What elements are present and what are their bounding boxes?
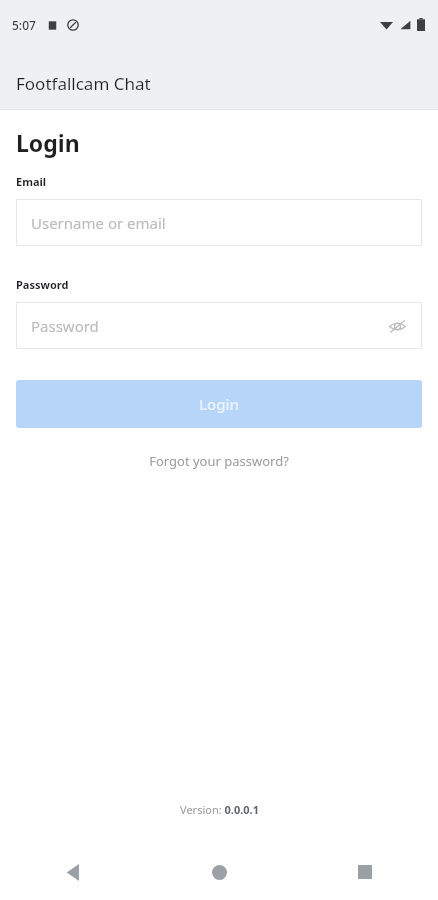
staticText: Footfallcam Chat [16,72,151,95]
staticText: Email [16,174,47,189]
button[interactable]: Home [146,844,292,900]
staticText: Username or email [31,213,166,233]
button[interactable]: Back [0,844,146,900]
button[interactable]: Show password [384,313,410,339]
staticText: Password [31,316,99,336]
button[interactable]: Login [16,380,422,428]
staticText: 5:07 [12,17,36,33]
staticText: Forgot your password? [149,452,289,470]
staticText: Password [16,277,69,292]
button[interactable]: Username or email [16,199,422,246]
button[interactable]: Recent apps [292,844,438,900]
staticText: Login [16,127,80,158]
button[interactable]: Forgot your password? [141,448,297,474]
staticText: Version: 0.0.0.1 [180,802,259,817]
staticText: Login [199,394,239,414]
button[interactable]: Password [16,302,422,349]
